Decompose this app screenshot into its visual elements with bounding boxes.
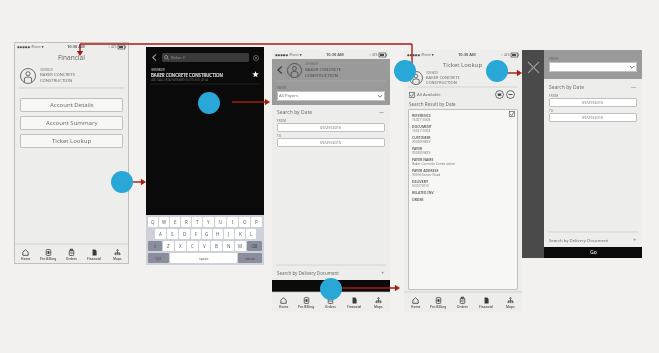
button[interactable]: B (211, 241, 222, 251)
staticText: Search by Date (277, 109, 379, 116)
button[interactable]: F (191, 229, 201, 239)
button[interactable]: Maps (106, 245, 129, 264)
button[interactable]: Search by Date (277, 109, 385, 116)
button[interactable]: All Payers (279, 91, 383, 101)
button[interactable]: E (170, 217, 180, 227)
staticText: + (633, 236, 637, 244)
button[interactable]: Pre-Billing (37, 245, 60, 264)
button[interactable]: Go (272, 280, 390, 292)
button[interactable]: J (224, 229, 234, 239)
button[interactable]: K (235, 229, 245, 239)
button[interactable]: L (246, 229, 256, 239)
button[interactable]: Financial (342, 293, 366, 312)
button[interactable]: 3059829 (151, 67, 259, 82)
button[interactable]: N (223, 241, 234, 251)
button[interactable]: Clear (252, 54, 260, 62)
button[interactable]: Back (275, 65, 285, 75)
button[interactable]: Maps (366, 293, 390, 312)
button[interactable]: Q (148, 217, 158, 227)
button[interactable]: ⇧ (148, 241, 162, 251)
button[interactable]: 09/29/2015 (549, 113, 637, 122)
button[interactable]: Pre-Billing (427, 293, 450, 312)
staticText: Financial (347, 305, 362, 309)
staticText: PAYER (277, 86, 287, 90)
staticText: FROM (549, 94, 559, 98)
button[interactable]: All Available (409, 92, 441, 98)
staticText: Home (279, 305, 289, 309)
staticText: 10:30 AM (67, 44, 85, 49)
button[interactable]: return (238, 253, 262, 263)
staticText: TO (549, 109, 554, 113)
staticText: RELATED INV (412, 190, 434, 195)
staticText: N (227, 243, 231, 249)
button[interactable]: O (239, 217, 250, 227)
button[interactable]: A (155, 229, 166, 239)
staticText: S (171, 231, 174, 237)
button[interactable]: Home (404, 293, 427, 312)
button[interactable]: Close (522, 50, 544, 258)
button[interactable]: Maps (498, 293, 522, 312)
button[interactable]: Print (495, 90, 504, 99)
button[interactable]: W (159, 217, 169, 227)
button[interactable]: Y (203, 217, 214, 227)
staticText: T (196, 219, 199, 225)
staticText: X (179, 243, 182, 249)
button[interactable]: 09/29/2015 (277, 123, 385, 132)
staticText: PAYER (412, 146, 423, 151)
button[interactable]: 09/29/2015 (549, 98, 637, 107)
staticText: K (239, 231, 242, 237)
button[interactable]: Orders (318, 293, 342, 312)
button[interactable]: Baker C (164, 53, 247, 62)
button[interactable]: R (181, 217, 191, 227)
staticText: Z (167, 243, 170, 249)
button[interactable]: ⌫ (247, 241, 262, 251)
button[interactable]: Search by Delivery Document (277, 269, 385, 277)
button[interactable]: Financial (83, 245, 106, 264)
button[interactable]: H (213, 229, 223, 239)
button[interactable]: Account Details (20, 98, 123, 112)
button[interactable]: REFERENCE (408, 109, 518, 290)
button[interactable]: Z (163, 241, 174, 251)
button[interactable]: V (199, 241, 210, 251)
button[interactable]: Home (272, 293, 295, 312)
button[interactable]: U (215, 217, 226, 227)
button[interactable]: 09/29/2015 (277, 138, 385, 147)
button[interactable]: Orders (450, 293, 474, 312)
button[interactable]: C (187, 241, 198, 251)
staticText: Pre-Billing (430, 305, 447, 309)
staticText: I (232, 219, 234, 225)
button[interactable]: 123 (148, 253, 169, 263)
staticText: BAKER CONCRETE CONSTRUCTION (151, 72, 223, 78)
staticText: 09/29/2015 (582, 115, 604, 120)
button[interactable]: M (235, 241, 246, 251)
button[interactable] (551, 62, 635, 72)
staticText: F (195, 231, 198, 237)
button[interactable]: Account Summary (20, 116, 123, 130)
button[interactable]: Home (14, 245, 37, 264)
button[interactable]: Ticket Lookup (20, 134, 123, 148)
button[interactable]: G (202, 229, 212, 239)
staticText: V (203, 243, 206, 249)
button[interactable]: S (167, 229, 178, 239)
staticText: PAYER (549, 57, 559, 61)
staticText: Baker C (171, 55, 186, 60)
staticText: CONSTRUCTION (40, 78, 73, 84)
button[interactable]: Go (544, 247, 642, 258)
button[interactable]: X (175, 241, 186, 251)
button[interactable]: space (170, 253, 237, 263)
button[interactable]: Pre-Billing (295, 293, 318, 312)
button[interactable]: Financial (474, 293, 498, 312)
staticText: REFERENCE (412, 113, 431, 118)
button[interactable]: T (192, 217, 202, 227)
staticText: Financial (87, 257, 102, 261)
button[interactable]: Filter (506, 90, 515, 99)
staticText: + (381, 269, 385, 277)
button[interactable]: D (179, 229, 190, 239)
button[interactable]: Orders (60, 245, 83, 264)
button[interactable]: Back (150, 53, 159, 62)
staticText: return (245, 256, 256, 261)
button[interactable]: P (251, 217, 262, 227)
button[interactable]: I (227, 217, 238, 227)
button[interactable]: Search by Date (549, 84, 637, 91)
button[interactable]: Search by Delivery Document (549, 236, 637, 244)
